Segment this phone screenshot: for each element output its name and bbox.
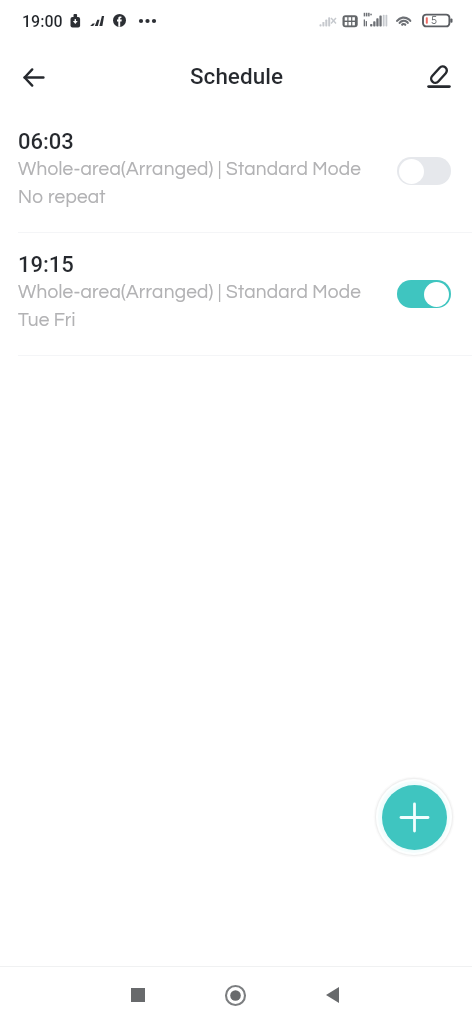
button[interactable]: Add schedule bbox=[382, 785, 447, 850]
button[interactable]: Recent apps bbox=[114, 971, 162, 1019]
button[interactable]: 06:03 bbox=[0, 110, 472, 232]
staticText: Whole-area(Arranged) | Standard Mode bbox=[18, 282, 362, 302]
staticText: No repeat bbox=[18, 187, 106, 207]
button[interactable]: 19:15 bbox=[0, 233, 472, 355]
button[interactable]: Home bbox=[211, 971, 259, 1019]
button[interactable]: Edit bbox=[423, 61, 455, 93]
staticText: 19:00 bbox=[22, 12, 63, 31]
button[interactable]: Back bbox=[11, 55, 55, 99]
staticText: Whole-area(Arranged) | Standard Mode bbox=[18, 159, 362, 179]
button[interactable]: Turn off schedule bbox=[397, 280, 451, 308]
staticText: 19:15 bbox=[18, 252, 74, 278]
staticText: 06:03 bbox=[18, 129, 74, 155]
staticText: Tue Fri bbox=[18, 310, 76, 330]
button[interactable]: Turn on schedule bbox=[397, 157, 451, 185]
staticText: Schedule bbox=[190, 63, 283, 89]
button[interactable]: Back bbox=[308, 971, 356, 1019]
staticText: 5 bbox=[431, 15, 438, 26]
